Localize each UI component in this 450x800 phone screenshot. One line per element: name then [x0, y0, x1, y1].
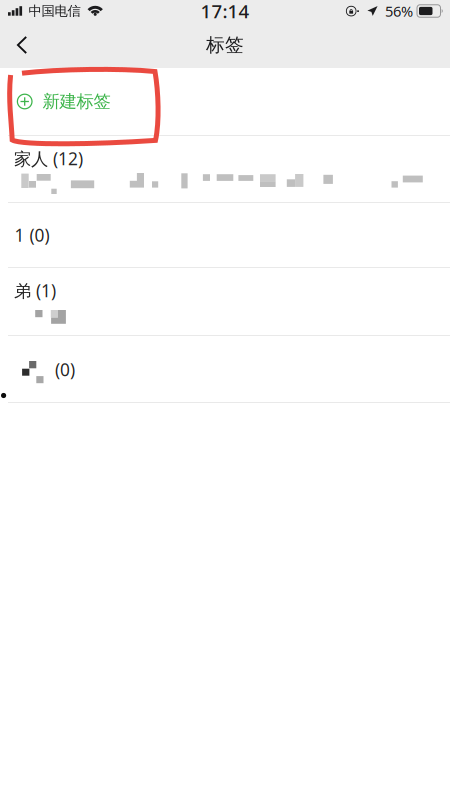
- staticText: 弟 (1): [14, 279, 56, 302]
- button[interactable]: 新建标签: [0, 68, 450, 135]
- staticText: 1 (0): [14, 223, 49, 246]
- button[interactable]: 家人 (12): [0, 136, 450, 202]
- staticText: 新建标签: [42, 91, 110, 112]
- staticText: 中国电信: [28, 3, 80, 19]
- staticText: 56%: [385, 1, 413, 21]
- button[interactable]: Back: [0, 23, 43, 67]
- staticText: 标签: [206, 33, 244, 56]
- staticText: 家人 (12): [14, 147, 83, 170]
- button[interactable]: (0): [0, 336, 450, 402]
- button[interactable]: 1 (0): [0, 203, 450, 267]
- staticText: (0): [55, 358, 75, 381]
- staticText: 17:14: [200, 0, 249, 23]
- button[interactable]: 弟 (1): [0, 268, 450, 335]
